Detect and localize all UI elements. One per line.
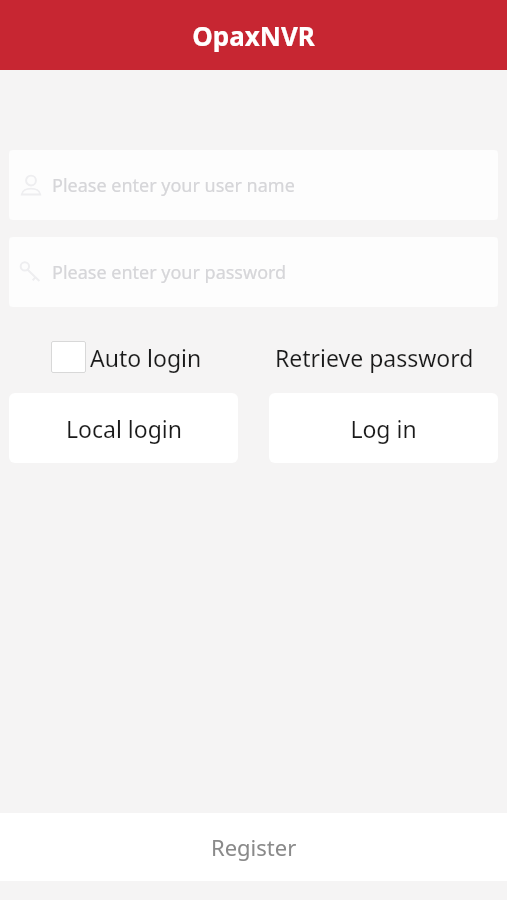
button[interactable]: Register: [0, 813, 507, 881]
other: Password: [17, 258, 45, 286]
staticText: Please enter your password: [52, 260, 287, 285]
button[interactable]: Retrieve password: [268, 335, 481, 380]
staticText: Local login: [66, 413, 182, 444]
button[interactable]: Password: [9, 237, 498, 307]
staticText: Log in: [350, 413, 417, 444]
button[interactable]: Local login: [9, 393, 238, 463]
staticText: Please enter your user name: [52, 173, 295, 198]
staticText: Auto login: [90, 342, 202, 373]
other: User name: [17, 171, 45, 199]
button[interactable]: User name: [9, 150, 498, 220]
staticText: Register: [211, 832, 297, 862]
button[interactable]: Auto login: [44, 334, 209, 380]
button[interactable]: Log in: [269, 393, 498, 463]
staticText: Retrieve password: [275, 342, 474, 373]
staticText: OpaxNVR: [192, 18, 315, 53]
